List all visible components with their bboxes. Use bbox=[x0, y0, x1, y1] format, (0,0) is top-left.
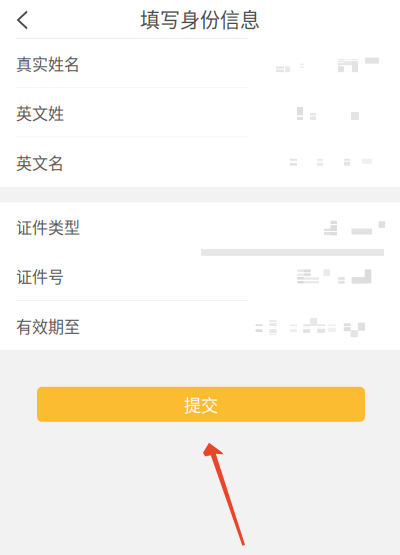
staticText: 有效期至 bbox=[16, 314, 80, 337]
staticText: 填写身份信息 bbox=[140, 4, 260, 33]
button[interactable]: 英文姓 bbox=[0, 88, 400, 137]
staticText: 英文姓 bbox=[16, 101, 64, 124]
button[interactable]: 英文名 bbox=[0, 138, 400, 187]
button[interactable]: 证件类型 bbox=[0, 202, 400, 251]
button[interactable]: 提交 bbox=[37, 387, 365, 422]
staticText: 证件类型 bbox=[16, 215, 80, 238]
staticText: 证件号 bbox=[16, 264, 64, 287]
staticText: 英文名 bbox=[16, 151, 64, 174]
button[interactable]: 证件号 bbox=[0, 252, 400, 300]
staticText: 提交 bbox=[184, 392, 218, 417]
button[interactable]: 有效期至 bbox=[0, 301, 400, 350]
staticText: 真实姓名 bbox=[16, 52, 80, 75]
button[interactable]: 真实姓名 bbox=[0, 39, 400, 87]
button[interactable]: Back bbox=[0, 0, 48, 39]
